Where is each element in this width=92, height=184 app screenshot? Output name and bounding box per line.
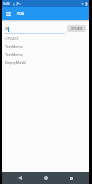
button[interactable]: Home (38, 172, 54, 184)
staticText: 9:46 (3, 1, 10, 6)
button[interactable]: TextMemo (2, 42, 89, 50)
button[interactable]: Navigation menu (2, 7, 15, 20)
staticText: PDA (17, 11, 25, 16)
button[interactable]: Back (12, 172, 28, 184)
staticText: EmptyModel (5, 60, 27, 65)
button[interactable]: Recent apps (63, 172, 79, 184)
staticText: UPDATE (5, 36, 19, 41)
staticText: TextMemo (5, 44, 23, 49)
staticText: a (5, 25, 8, 32)
staticText: UPDATE (71, 27, 83, 31)
button[interactable]: EmptyModel (2, 58, 89, 66)
button[interactable]: UPDATE (2, 34, 89, 42)
button[interactable]: TextMemo (2, 50, 89, 58)
button[interactable]: a (5, 23, 65, 34)
staticText: TextMemo (5, 52, 23, 57)
button[interactable]: UPDATE (67, 25, 86, 32)
